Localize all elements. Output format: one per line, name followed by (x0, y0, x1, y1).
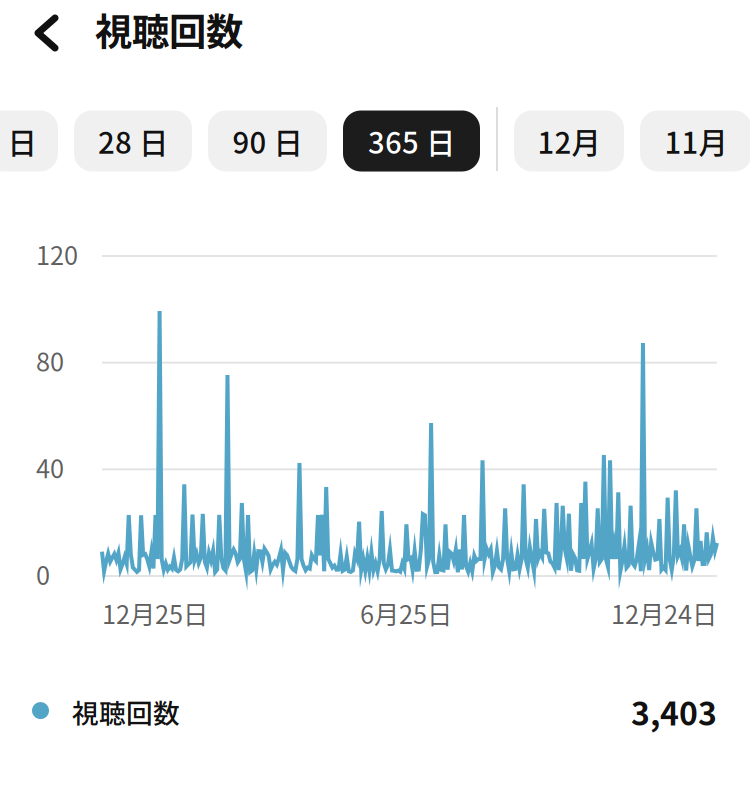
staticText: 120 (36, 236, 78, 272)
staticText: 90 日 (232, 120, 302, 162)
button[interactable]: 12月 (514, 110, 624, 171)
button[interactable]: 日 (0, 110, 58, 171)
staticText: 12月24日 (611, 595, 717, 631)
button[interactable]: 11月 (640, 110, 750, 171)
staticText: 視聴回数 (95, 3, 243, 56)
staticText: 80 (36, 343, 64, 378)
staticText: 28 日 (98, 120, 168, 162)
staticText: 12月 (537, 120, 600, 162)
staticText: 365 日 (368, 120, 455, 162)
staticText: 3,403 (631, 689, 717, 734)
staticText: 40 (36, 449, 64, 485)
staticText: 0 (36, 556, 50, 592)
staticText: 11月 (664, 120, 727, 162)
button[interactable]: 90 日 (208, 110, 327, 171)
staticText: 12月25日 (102, 595, 208, 631)
button[interactable]: 戻る (26, 6, 67, 60)
button[interactable]: 365 日 (343, 110, 480, 171)
staticText: 日 (7, 120, 36, 162)
staticText: 視聴回数 (72, 693, 180, 730)
button[interactable]: 28 日 (74, 110, 192, 171)
staticText: 6月25日 (360, 595, 452, 631)
